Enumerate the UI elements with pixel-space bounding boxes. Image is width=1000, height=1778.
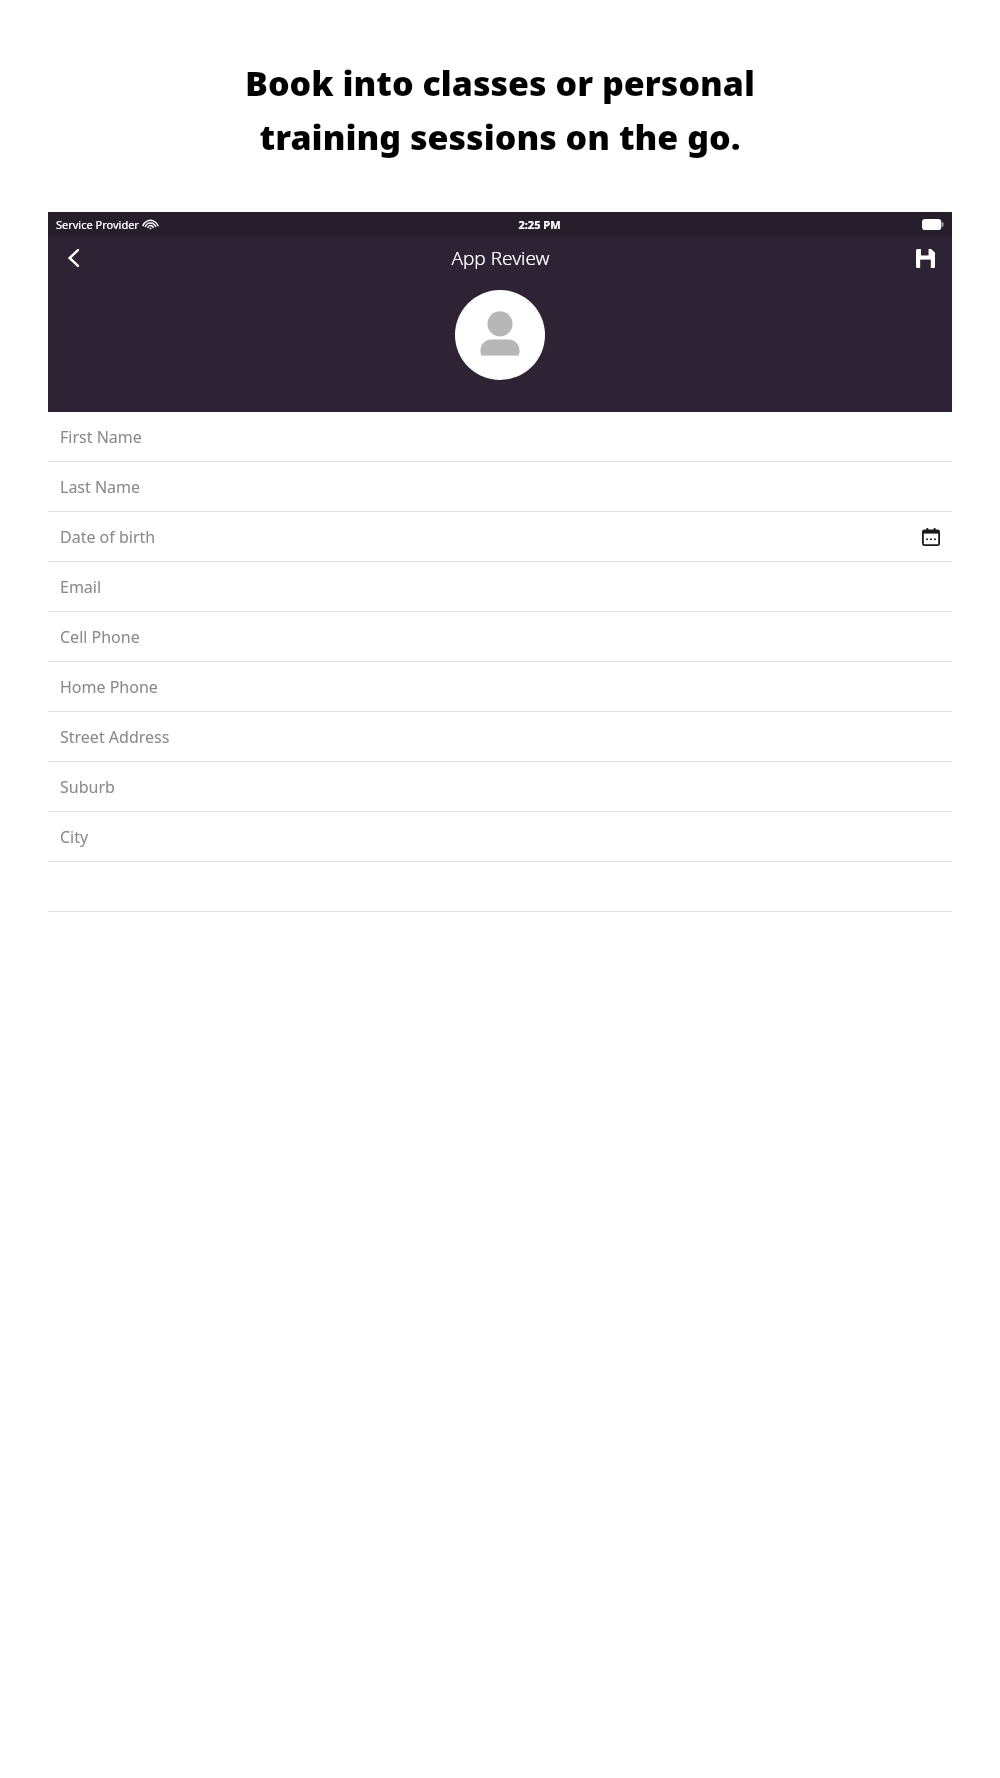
staticText: Email bbox=[60, 576, 102, 598]
staticText: Home Phone bbox=[60, 676, 158, 698]
staticText: App Review bbox=[451, 245, 550, 271]
staticText: Cell Phone bbox=[60, 626, 140, 648]
button[interactable] bbox=[48, 862, 952, 912]
button[interactable]: Date of birth bbox=[48, 512, 952, 562]
staticText: 2:25 PM bbox=[518, 217, 561, 232]
staticText: First Name bbox=[60, 426, 142, 448]
button[interactable]: Cell Phone bbox=[48, 612, 952, 662]
staticText: training sessions on the go. bbox=[20, 114, 980, 160]
button[interactable]: Suburb bbox=[48, 762, 952, 812]
staticText: Service Provider bbox=[56, 217, 139, 232]
staticText: Book into classes or personal bbox=[20, 60, 980, 106]
button[interactable]: Street Address bbox=[48, 712, 952, 762]
button[interactable]: Profile photo bbox=[455, 290, 545, 380]
button[interactable]: Back bbox=[54, 238, 94, 278]
staticText: City bbox=[60, 826, 89, 848]
button[interactable]: Email bbox=[48, 562, 952, 612]
button[interactable]: Save bbox=[906, 239, 944, 277]
button[interactable]: City bbox=[48, 812, 952, 862]
button[interactable]: Last Name bbox=[48, 462, 952, 512]
button[interactable]: First Name bbox=[48, 412, 952, 462]
staticText: Last Name bbox=[60, 476, 141, 498]
staticText: Street Address bbox=[60, 726, 170, 748]
staticText: Date of birth bbox=[60, 526, 156, 548]
button[interactable]: Home Phone bbox=[48, 662, 952, 712]
staticText: Suburb bbox=[60, 776, 115, 798]
